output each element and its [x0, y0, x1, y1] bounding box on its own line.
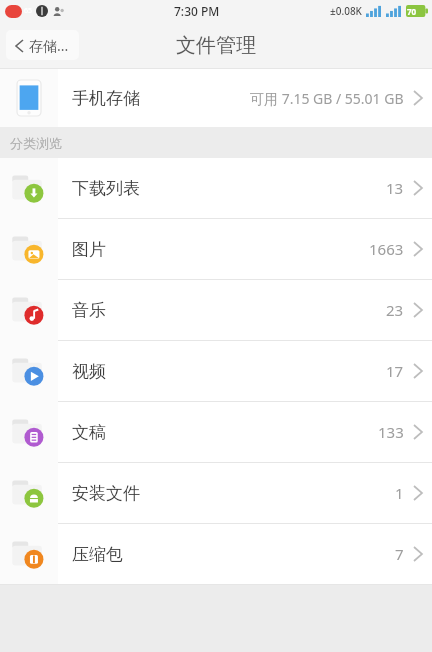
button[interactable]: 视频 — [0, 341, 432, 401]
button[interactable]: 安装文件 — [0, 463, 432, 523]
button[interactable]: 文稿 — [0, 402, 432, 462]
staticText: 1 — [395, 483, 404, 503]
staticText: 7 — [395, 544, 404, 564]
staticText: 存储... — [29, 36, 69, 55]
staticText: 70 — [407, 6, 417, 17]
staticText: 手机存储 — [72, 88, 140, 109]
staticText: 图片 — [72, 239, 106, 260]
staticText: 文稿 — [72, 422, 106, 443]
staticText: 压缩包 — [72, 544, 123, 565]
staticText: 13 — [386, 178, 404, 198]
button[interactable]: 压缩包 — [0, 524, 432, 584]
staticText: 65 — [24, 6, 33, 16]
staticText: 17 — [386, 361, 404, 381]
staticText: 文件管理 — [176, 33, 256, 58]
staticText: 分类浏览 — [10, 135, 62, 151]
button[interactable]: 下载列表 — [0, 158, 432, 218]
button[interactable]: 手机存储 — [0, 69, 432, 127]
staticText: 133 — [378, 422, 404, 442]
staticText: 可用 7.15 GB / 55.01 GB — [250, 89, 404, 108]
button[interactable]: 图片 — [0, 219, 432, 279]
staticText: 下载列表 — [72, 178, 140, 199]
staticText: 1663 — [369, 239, 404, 259]
staticText: 安装文件 — [72, 483, 140, 504]
button[interactable]: 音乐 — [0, 280, 432, 340]
staticText: 视频 — [72, 361, 106, 382]
staticText: 音乐 — [72, 300, 106, 321]
staticText: 23 — [386, 300, 404, 320]
button[interactable]: 存储... — [6, 30, 79, 60]
staticText: ±0.08K — [330, 4, 362, 18]
staticText: 7:30 PM — [174, 3, 220, 19]
